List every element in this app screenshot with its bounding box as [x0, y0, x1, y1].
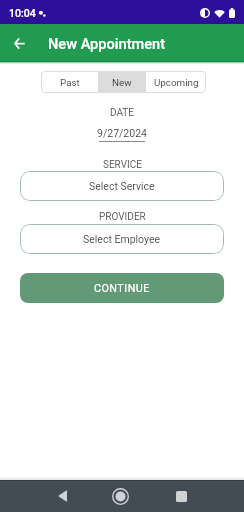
staticText: PROVIDER: [99, 211, 146, 223]
staticText: Past: [60, 77, 80, 88]
button[interactable]: Select Employee: [20, 224, 224, 254]
button[interactable]: Past: [41, 71, 98, 93]
button[interactable]: Home: [104, 480, 136, 512]
staticText: Select Service: [89, 180, 155, 192]
button[interactable]: Select Service: [20, 171, 224, 201]
button[interactable]: Back: [6, 30, 32, 56]
button[interactable]: 9/27/2024: [97, 127, 147, 142]
button[interactable]: Upcoming: [146, 71, 206, 93]
staticText: New Appointment: [48, 35, 166, 52]
staticText: 10:04: [9, 7, 36, 19]
staticText: Select Employee: [83, 233, 161, 245]
staticText: SERVICE: [103, 159, 142, 171]
button[interactable]: Recent apps: [165, 480, 197, 512]
button[interactable]: New: [99, 71, 145, 93]
button[interactable]: Back: [46, 480, 78, 512]
staticText: New: [112, 77, 132, 88]
staticText: 9/27/2024: [97, 127, 147, 139]
staticText: DATE: [110, 107, 135, 119]
staticText: CONTINUE: [94, 282, 150, 295]
button[interactable]: CONTINUE: [20, 273, 224, 303]
staticText: Upcoming: [154, 77, 199, 88]
